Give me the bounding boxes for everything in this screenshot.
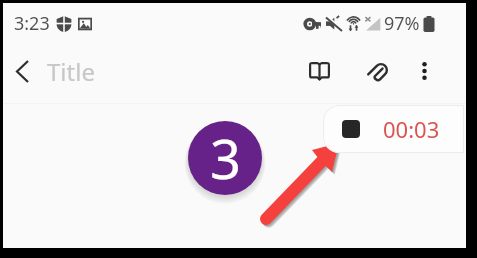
staticText: Title <box>47 55 95 88</box>
staticText: 3 <box>210 121 241 195</box>
button[interactable]: Stop recording <box>323 105 464 153</box>
button[interactable]: Attach file <box>359 51 399 91</box>
button[interactable]: 3 <box>188 121 262 195</box>
button[interactable]: Stop recording <box>342 120 360 138</box>
button[interactable]: More options <box>404 51 444 91</box>
button[interactable]: Dictionary <box>299 51 339 91</box>
button[interactable]: Back <box>3 52 41 90</box>
staticText: 3:23 <box>14 11 50 36</box>
staticText: 97% <box>384 11 420 36</box>
staticText: 00:03 <box>383 114 440 144</box>
